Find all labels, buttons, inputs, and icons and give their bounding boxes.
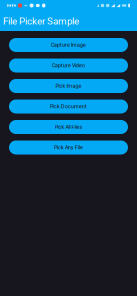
staticText: Pick Document xyxy=(50,103,87,110)
button[interactable]: Pick All Files xyxy=(9,120,128,134)
button[interactable]: Pick Document xyxy=(9,99,128,113)
button[interactable]: Capture Video xyxy=(9,58,128,72)
staticText: File Picker Sample xyxy=(3,15,79,27)
staticText: Capture Video xyxy=(52,62,85,69)
staticText: Pick Image xyxy=(55,83,81,89)
button[interactable]: Capture Image xyxy=(9,38,128,52)
staticText: Capture Image xyxy=(51,42,86,48)
button[interactable]: Pick Image xyxy=(9,79,128,93)
staticText: Pick All Files xyxy=(54,124,82,130)
staticText: Pick Any File xyxy=(54,144,83,151)
button[interactable]: Pick Any File xyxy=(9,140,128,154)
